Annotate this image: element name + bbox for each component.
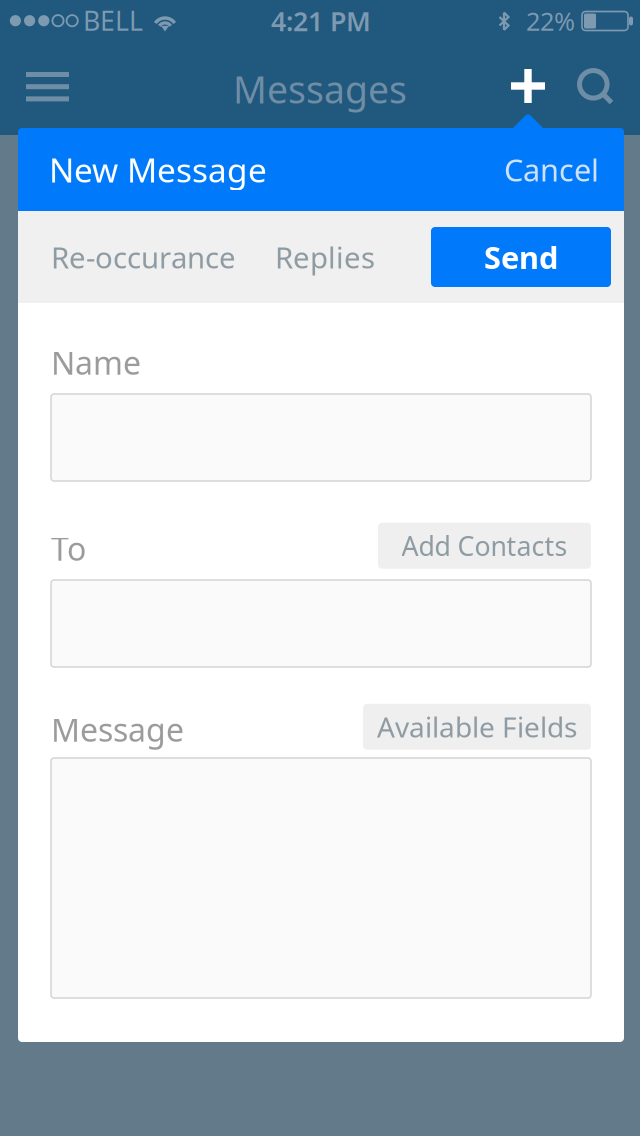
staticText: Messages — [233, 64, 407, 114]
staticText: New Message — [49, 147, 267, 192]
staticText: Replies — [275, 237, 375, 276]
staticText: Message — [51, 708, 184, 750]
button[interactable]: Menu — [0, 43, 95, 134]
staticText: BELL — [83, 3, 143, 38]
button[interactable]: Re-occurance — [51, 211, 236, 303]
staticText: Name — [51, 341, 141, 383]
button[interactable]: Send — [431, 227, 611, 287]
staticText: To — [51, 527, 86, 569]
button[interactable]: Available Fields — [363, 704, 591, 750]
staticText: Cancel — [504, 149, 599, 190]
staticText: Add Contacts — [401, 528, 567, 563]
staticText: Available Fields — [377, 708, 577, 745]
button[interactable]: Search — [563, 58, 628, 117]
button[interactable]: New Message — [497, 57, 559, 115]
staticText: 22% — [526, 4, 575, 38]
staticText: Send — [484, 237, 558, 277]
staticText: Re-occurance — [51, 237, 236, 276]
button[interactable]: Add Contacts — [378, 523, 591, 569]
staticText: 4:21 PM — [271, 3, 371, 39]
button[interactable]: Replies — [236, 211, 375, 303]
button[interactable]: Cancel — [504, 128, 599, 211]
